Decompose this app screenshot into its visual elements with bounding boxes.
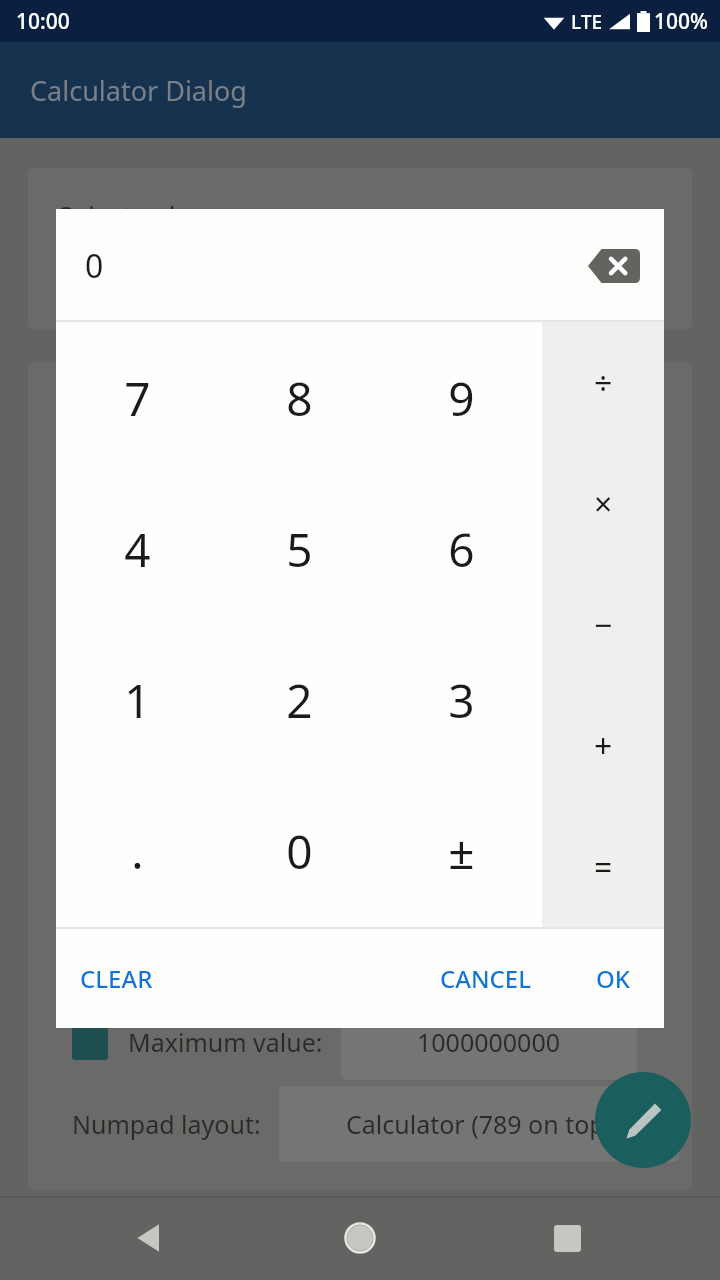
- button[interactable]: OK: [584, 948, 642, 1009]
- staticText: +: [594, 724, 613, 768]
- button[interactable]: Edit: [595, 1072, 691, 1168]
- button[interactable]: 2: [218, 625, 380, 776]
- staticText: 100%: [654, 7, 708, 36]
- button[interactable]: 5: [218, 474, 380, 625]
- staticText: CANCEL: [440, 962, 532, 995]
- button[interactable]: Recent apps: [535, 1196, 599, 1280]
- staticText: 2: [286, 669, 313, 732]
- staticText: 7: [124, 367, 151, 430]
- staticText: ×: [594, 482, 613, 526]
- staticText: Calculator Dialog: [30, 72, 247, 109]
- staticText: OK: [596, 962, 630, 995]
- staticText: 0: [85, 244, 104, 288]
- staticText: CLEAR: [80, 962, 153, 995]
- button[interactable]: 9: [380, 322, 542, 474]
- staticText: ±: [448, 820, 475, 883]
- staticText: 9: [448, 367, 475, 430]
- staticText: 1000000000: [417, 1025, 561, 1059]
- button[interactable]: 3: [380, 625, 542, 776]
- button[interactable]: 4: [56, 474, 218, 625]
- button[interactable]: 1: [56, 625, 218, 776]
- button[interactable]: +: [542, 685, 664, 806]
- staticText: Select value: [58, 198, 208, 235]
- staticText: Numpad layout:: [72, 1107, 261, 1141]
- button[interactable]: Backspace: [588, 249, 640, 283]
- button[interactable]: 8: [218, 322, 380, 474]
- button[interactable]: 0: [218, 776, 380, 927]
- staticText: Calculator (789 on top): [346, 1107, 613, 1141]
- staticText: 8: [286, 367, 313, 430]
- staticText: 1: [124, 669, 151, 732]
- staticText: ÷: [594, 361, 613, 405]
- button[interactable]: 6: [380, 474, 542, 625]
- staticText: Maximum value:: [128, 1025, 323, 1059]
- button[interactable]: ±: [380, 776, 542, 927]
- button[interactable]: Home: [328, 1196, 392, 1280]
- staticText: 3: [448, 669, 475, 732]
- staticText: =: [594, 845, 613, 889]
- button[interactable]: =: [542, 806, 664, 927]
- staticText: 10:00: [16, 7, 70, 36]
- staticText: .: [131, 820, 144, 883]
- button[interactable]: CLEAR: [68, 948, 165, 1009]
- staticText: LTE: [571, 9, 603, 35]
- button[interactable]: ×: [542, 443, 664, 564]
- button[interactable]: 7: [56, 322, 218, 474]
- staticText: −: [594, 603, 613, 647]
- button[interactable]: −: [542, 564, 664, 685]
- button[interactable]: Back: [118, 1196, 182, 1280]
- staticText: 0: [286, 820, 313, 883]
- staticText: 6: [448, 518, 475, 581]
- staticText: 4: [124, 518, 151, 581]
- button[interactable]: .: [56, 776, 218, 927]
- button[interactable]: ÷: [542, 322, 664, 443]
- button[interactable]: CANCEL: [428, 948, 544, 1009]
- staticText: 5: [286, 518, 313, 581]
